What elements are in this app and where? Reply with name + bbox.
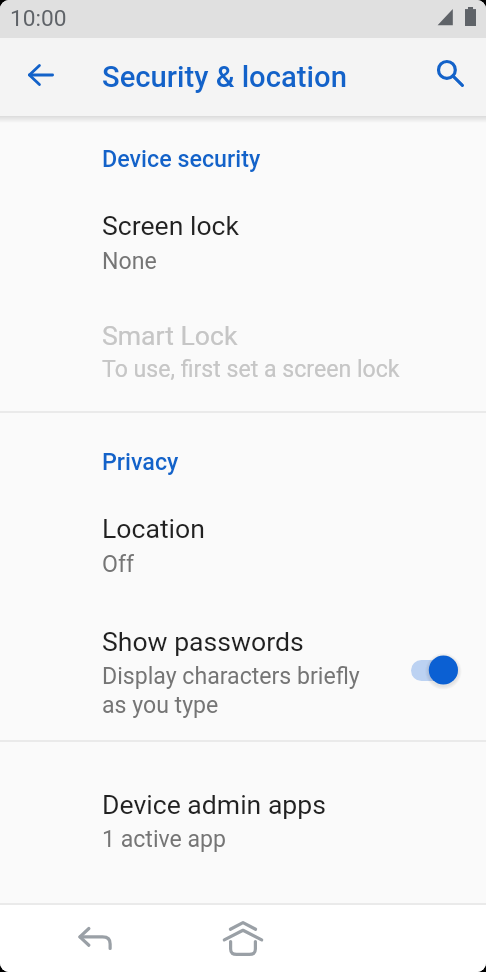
staticText: Location: [102, 513, 205, 544]
staticText: Privacy: [102, 448, 179, 475]
button[interactable]: Screen lock: [0, 210, 486, 275]
button[interactable]: Home: [209, 905, 277, 972]
button[interactable]: Navigate up: [13, 47, 69, 103]
button[interactable]: Show passwords: [0, 626, 486, 719]
staticText: To use, first set a screen lock: [102, 356, 400, 383]
staticText: Display characters briefly as you type: [102, 663, 360, 719]
button[interactable]: Back: [60, 905, 128, 972]
button[interactable]: Search: [419, 44, 475, 100]
staticText: Screen lock: [102, 210, 239, 241]
button[interactable]: Smart Lock: [0, 320, 486, 383]
button[interactable]: Location: [0, 513, 486, 578]
staticText: Off: [102, 551, 134, 578]
staticText: Show passwords: [102, 626, 304, 657]
staticText: Security & location: [102, 60, 347, 94]
staticText: Device security: [102, 145, 261, 172]
staticText: None: [102, 248, 157, 275]
staticText: 10:00: [10, 5, 67, 32]
staticText: Smart Lock: [102, 320, 238, 351]
staticText: 1 active app: [102, 826, 227, 853]
button[interactable]: Show passwords: [411, 650, 458, 690]
staticText: Device admin apps: [102, 789, 326, 820]
button[interactable]: Device admin apps: [0, 789, 486, 853]
